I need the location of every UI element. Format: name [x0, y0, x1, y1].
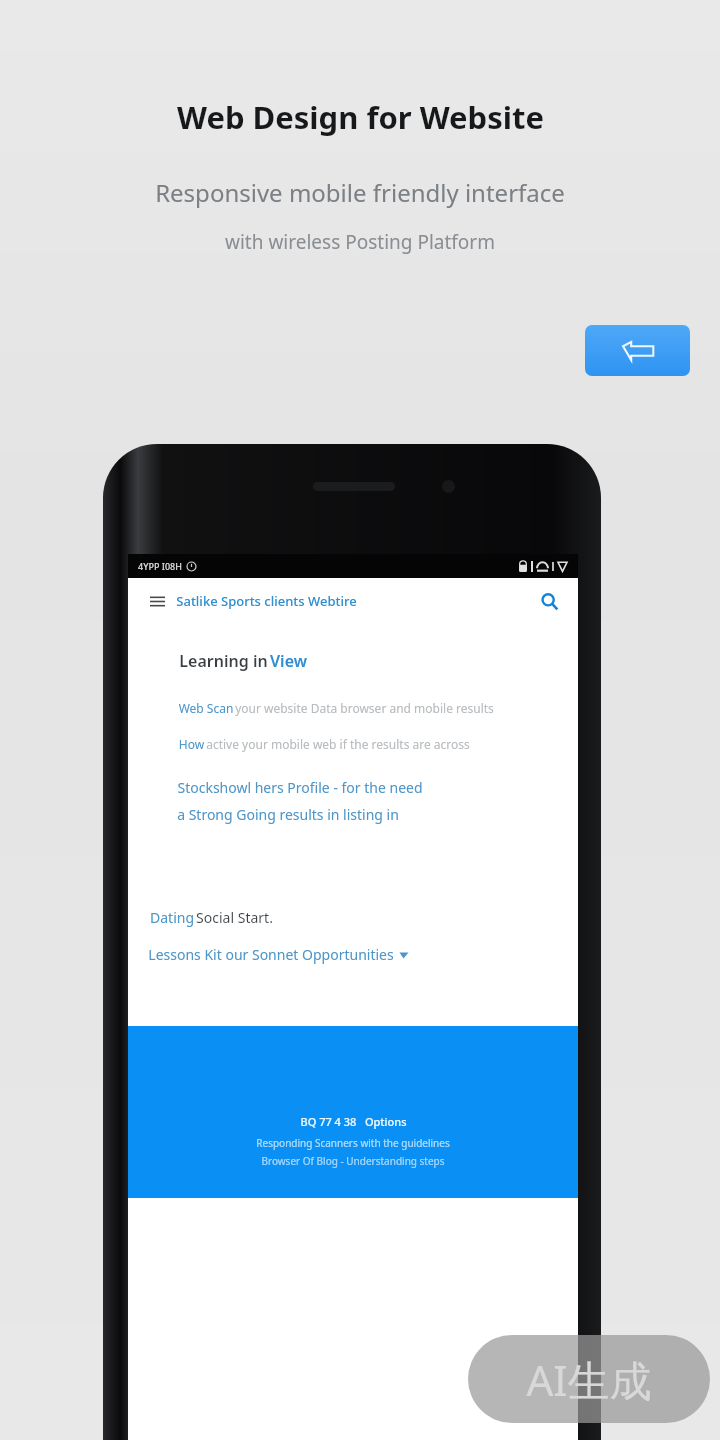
staticText: Lessons Kit our Sonnet Opportunities: [148, 945, 394, 964]
staticText: AI生成: [526, 1351, 652, 1408]
staticText: a Strong Going results in listing in: [177, 805, 399, 824]
staticText: 4YPP I08H: [138, 560, 182, 572]
staticText: Responding Scanners with the guidelines: [256, 1136, 450, 1150]
staticText: Dating: [148, 908, 196, 927]
button[interactable]: Search: [534, 586, 564, 616]
staticText: with wireless Posting Platform: [225, 229, 495, 255]
staticText: Browser Of Blog - Understanding steps: [261, 1154, 445, 1168]
staticText: Social Start.: [196, 908, 273, 927]
staticText: How: [177, 736, 206, 752]
staticText: Stockshowl hers Profile - for the need: [177, 778, 423, 797]
staticText: View: [270, 650, 307, 672]
staticText: Web Design for Website: [177, 96, 544, 138]
staticText: BQ 77 4 38 Options: [300, 1114, 407, 1129]
button[interactable]: Share: [585, 325, 690, 376]
button[interactable]: Menu: [142, 586, 172, 616]
staticText: your website Data browser and mobile res…: [235, 700, 494, 716]
staticText: Satlike Sports clients Webtire: [176, 592, 357, 610]
staticText: Responsive mobile friendly interface: [155, 176, 565, 209]
staticText: active your mobile web if the results ar…: [206, 736, 470, 752]
button[interactable]: Lessons Kit our Sonnet Opportunities: [148, 945, 409, 964]
staticText: Web Scan: [177, 700, 235, 716]
staticText: Learning in: [177, 650, 270, 672]
